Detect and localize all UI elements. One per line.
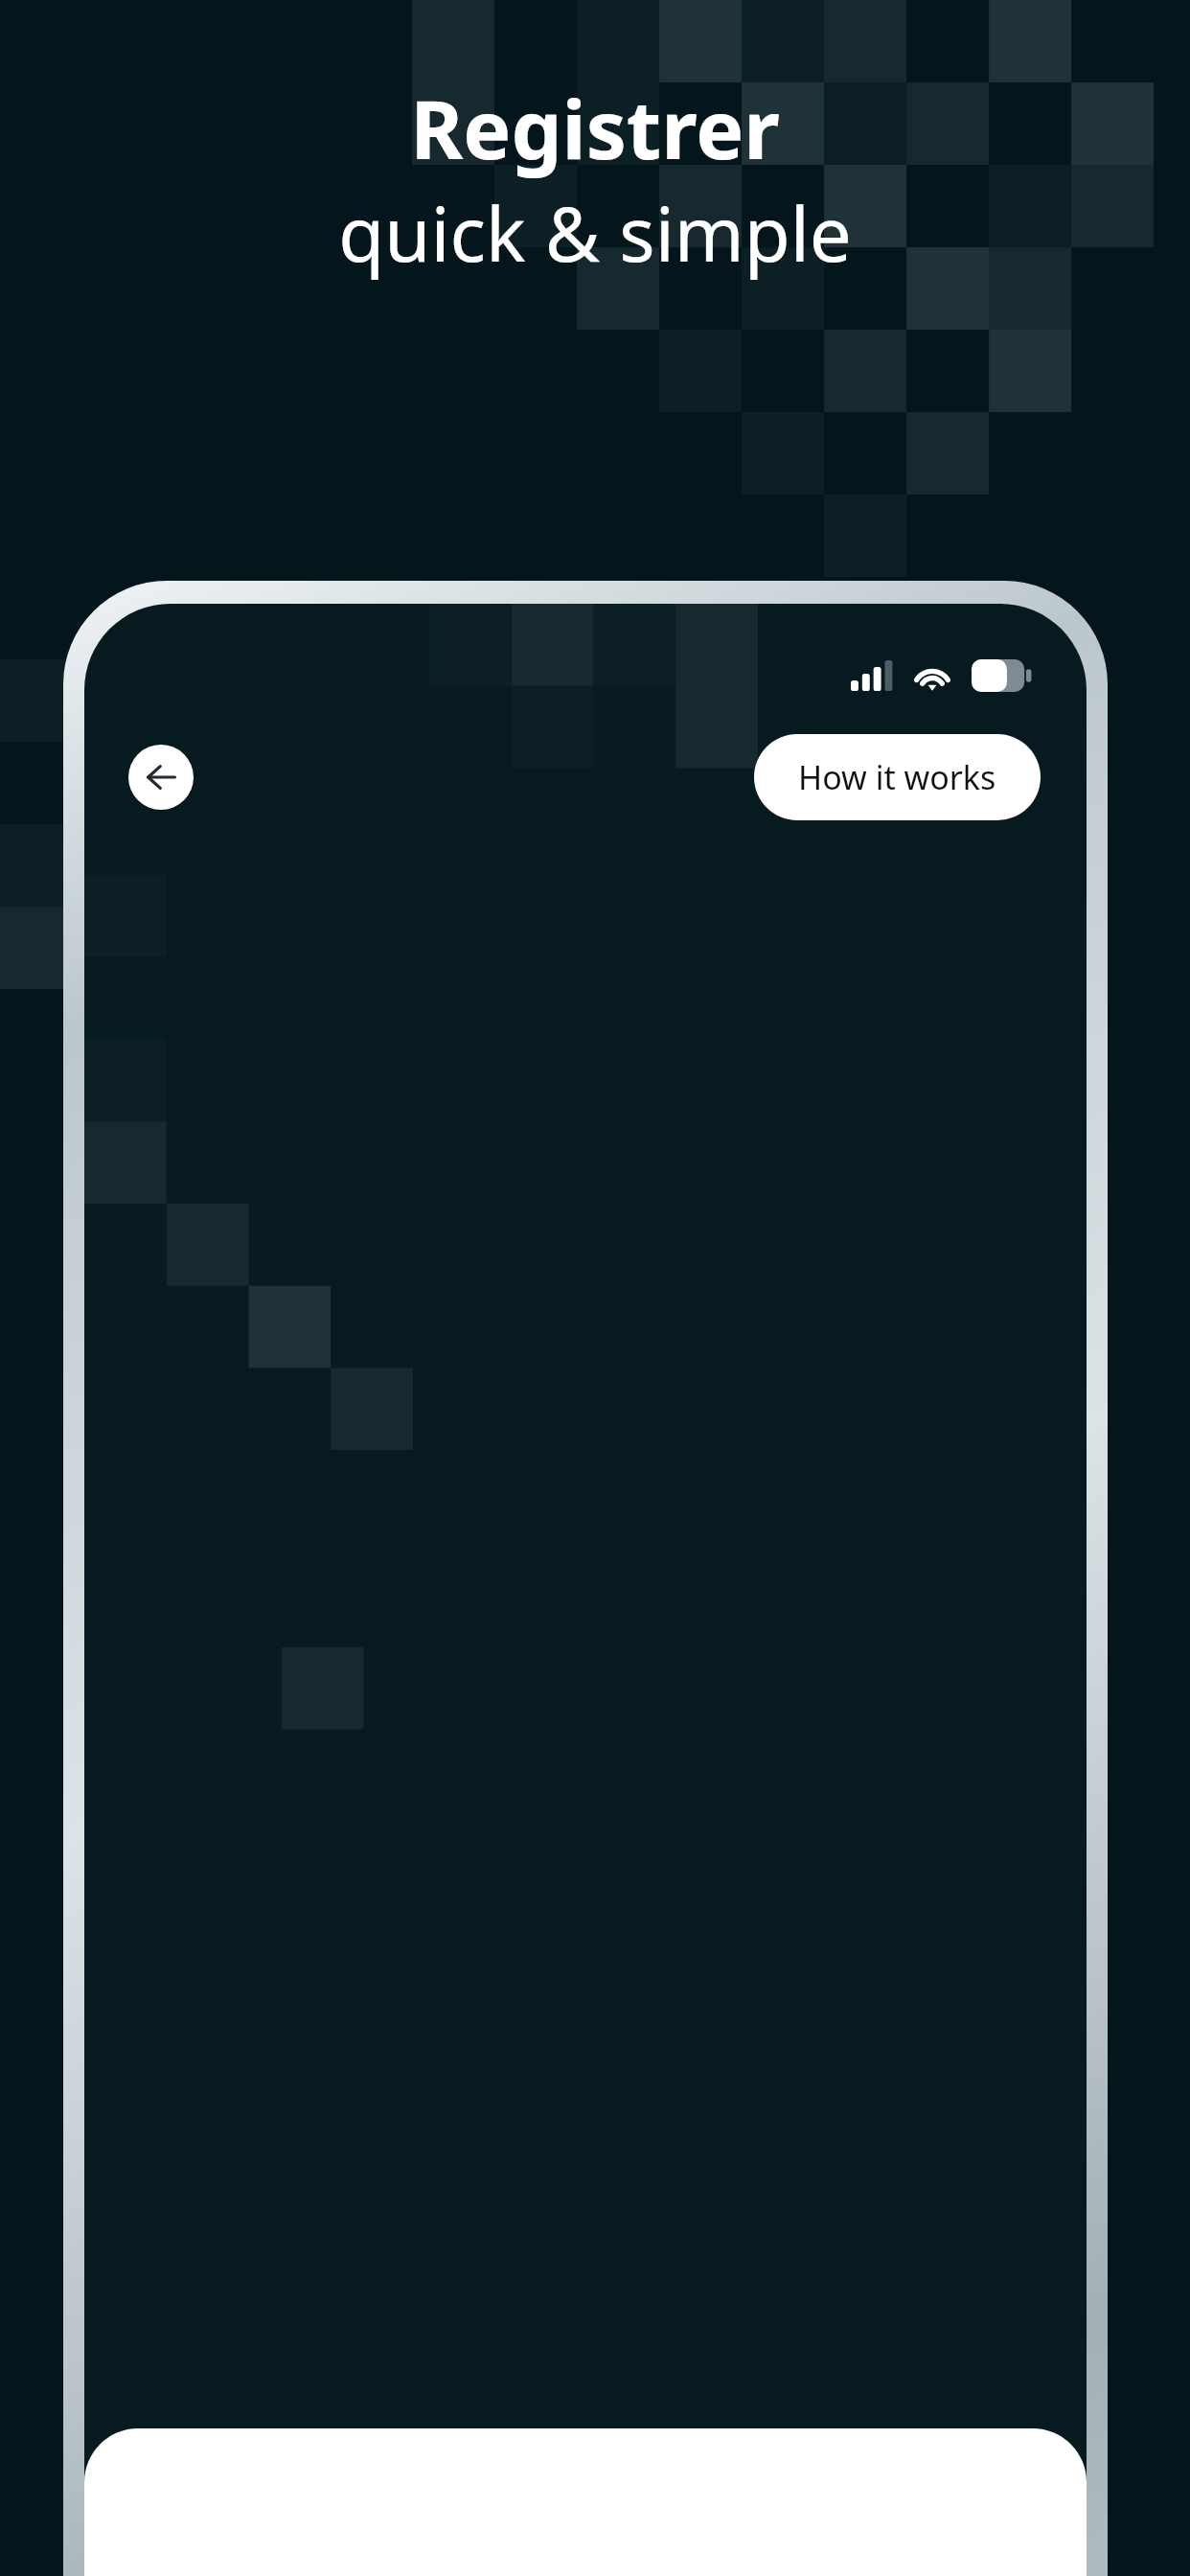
button[interactable]: Back bbox=[128, 745, 194, 810]
staticText: quick & simple bbox=[338, 182, 852, 284]
staticText: How it works bbox=[798, 755, 996, 799]
button[interactable]: How it works bbox=[754, 734, 1041, 820]
staticText: Registrer bbox=[410, 73, 780, 182]
